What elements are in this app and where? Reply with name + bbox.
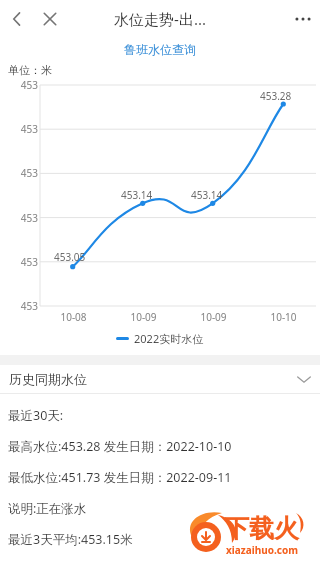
staticText: 说明:正在涨水 [8,500,87,517]
staticText: 453 [20,78,38,92]
staticText: 2022实时水位 [134,331,204,346]
staticText: 453.05 [54,250,86,264]
staticText: 453 [20,211,38,225]
staticText: 453.14 [121,188,153,202]
staticText: 最近3天平均:453.15米 [8,531,133,548]
staticText: 453 [20,255,38,269]
staticText: 下载火 [224,513,299,544]
staticText: 单位：米 [8,63,52,77]
staticText: 453.14 [191,188,223,202]
staticText: 10-08 [60,310,87,324]
staticText: 鲁班水位查询 [124,42,196,57]
staticText: 最近30天: [8,407,64,424]
staticText: 10-10 [270,310,297,324]
staticText: 最低水位:451.73 发生日期：2022-09-11 [8,469,232,486]
staticText: 453.28 [260,89,292,103]
button[interactable]: More options [288,4,318,34]
staticText: 水位走势-出... [114,9,206,29]
button[interactable]: Back [2,4,32,34]
staticText: 10-09 [130,310,157,324]
staticText: 453 [20,299,38,313]
staticText: 最高水位:453.28 发生日期：2022-10-10 [8,438,232,455]
button[interactable]: Close [35,4,65,34]
staticText: 453 [20,166,38,180]
staticText: xiazaihuo.com [226,543,298,557]
staticText: 453 [20,122,38,136]
staticText: 10-09 [200,310,227,324]
staticText: 历史同期水位 [9,371,87,387]
button[interactable]: 鲁班水位查询 [0,37,320,61]
button[interactable]: 历史同期水位 [0,365,320,393]
